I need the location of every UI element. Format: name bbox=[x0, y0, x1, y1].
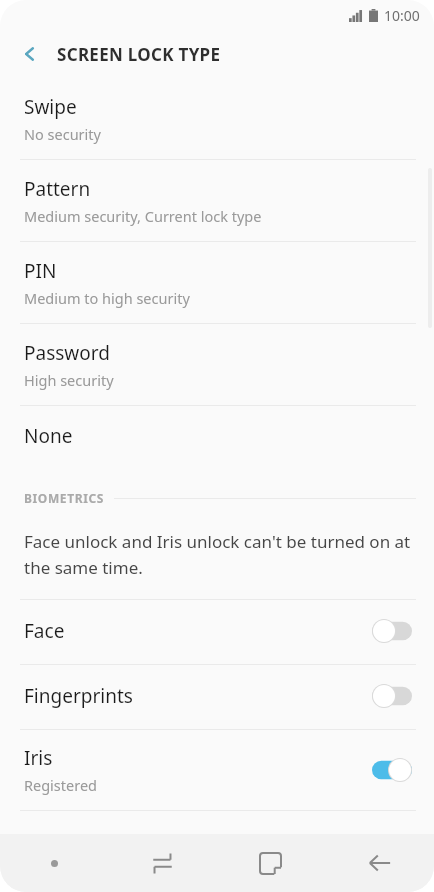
button[interactable]: Pattern bbox=[0, 160, 434, 241]
staticText: Registered bbox=[24, 775, 98, 795]
staticText: Iris bbox=[24, 745, 53, 771]
staticText: Medium to high security bbox=[24, 288, 190, 308]
button[interactable]: Recents bbox=[108, 834, 216, 892]
other: On bbox=[372, 758, 412, 782]
button[interactable]: Fingerprints bbox=[0, 665, 434, 729]
staticText: PIN bbox=[24, 258, 57, 284]
button[interactable]: Password bbox=[0, 324, 434, 405]
staticText: Swipe bbox=[24, 94, 77, 120]
staticText: SCREEN LOCK TYPE bbox=[57, 43, 221, 66]
staticText: Fingerprints bbox=[24, 683, 133, 709]
button[interactable]: PIN bbox=[0, 242, 434, 323]
button[interactable]: Home bbox=[216, 834, 325, 892]
staticText: 10:00 bbox=[384, 6, 420, 25]
staticText: BIOMETRICS bbox=[24, 490, 104, 506]
button[interactable]: Swipe bbox=[0, 78, 434, 159]
button[interactable]: Back bbox=[10, 34, 50, 74]
other: Off bbox=[372, 619, 412, 643]
staticText: Face unlock and Iris unlock can't be tur… bbox=[24, 530, 414, 579]
staticText: No security bbox=[24, 124, 101, 144]
other: Off bbox=[372, 684, 412, 708]
staticText: High security bbox=[24, 370, 114, 390]
button[interactable]: Iris bbox=[0, 730, 434, 810]
staticText: None bbox=[24, 423, 73, 449]
button[interactable]: Face bbox=[0, 600, 434, 664]
staticText: Password bbox=[24, 340, 110, 366]
staticText: Pattern bbox=[24, 176, 91, 202]
staticText: Medium security, Current lock type bbox=[24, 206, 262, 226]
staticText: Face bbox=[24, 618, 65, 644]
button[interactable]: None bbox=[0, 406, 434, 468]
button[interactable]: Back bbox=[325, 834, 434, 892]
